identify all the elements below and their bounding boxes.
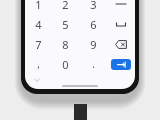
staticText: 4	[35, 17, 42, 32]
button[interactable]: 5	[52, 14, 79, 34]
button[interactable]: 7	[25, 34, 52, 54]
button[interactable]: 1	[25, 0, 52, 14]
button[interactable]: 9	[79, 34, 107, 54]
button[interactable]: 3	[79, 0, 107, 14]
staticText: 5	[62, 17, 69, 32]
button[interactable]: ,	[25, 54, 52, 74]
button[interactable]: Space	[107, 14, 135, 34]
staticText: 8	[62, 37, 69, 52]
button[interactable]: Enter	[111, 59, 131, 70]
button[interactable]: 8	[52, 34, 79, 54]
staticText: ,	[37, 57, 40, 71]
button[interactable]: Hide keyboard	[29, 75, 45, 85]
button[interactable]: 2	[52, 0, 79, 14]
staticText: .	[92, 57, 95, 71]
button[interactable]: Backspace	[107, 34, 135, 54]
button[interactable]: 0	[52, 54, 79, 74]
staticText: 7	[35, 37, 42, 52]
staticText: 0	[62, 57, 69, 72]
button[interactable]: .	[79, 54, 107, 74]
button[interactable]: 6	[79, 14, 107, 34]
button[interactable]: Minus	[107, 0, 135, 14]
staticText: 9	[90, 37, 97, 52]
staticText: 6	[90, 17, 97, 32]
button[interactable]: 4	[25, 14, 52, 34]
staticText: 2	[62, 0, 69, 12]
staticText: 3	[90, 0, 97, 12]
staticText: 1	[35, 0, 42, 12]
